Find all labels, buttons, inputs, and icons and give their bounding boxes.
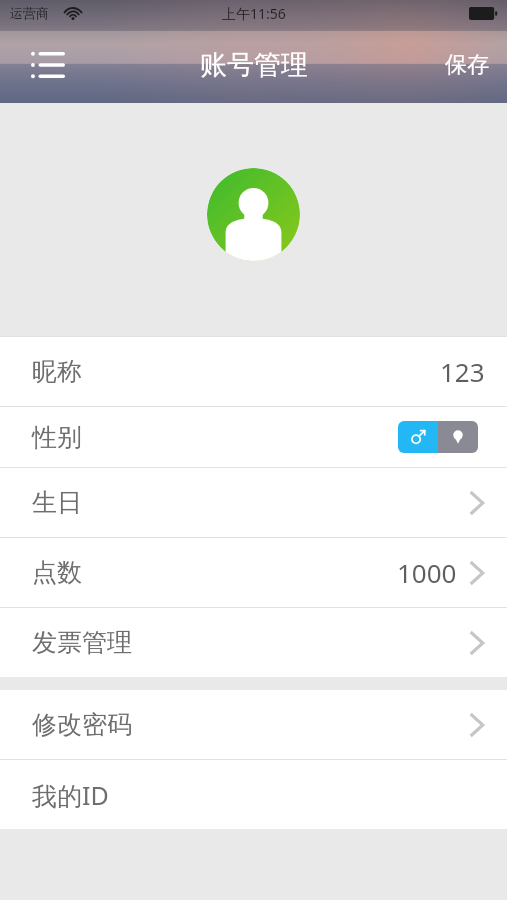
staticText: 上午11:56 [222,4,286,23]
button[interactable]: 性别 [0,407,507,467]
staticText: 我的ID [32,778,109,812]
staticText: 发票管理 [32,627,132,658]
button[interactable]: 保存 [427,41,507,89]
staticText: 性别 [32,422,82,453]
button[interactable]: Male [398,421,438,453]
button[interactable]: 昵称 [0,337,507,406]
staticText: 点数 [32,557,82,588]
button[interactable]: 我的ID [0,760,507,829]
button[interactable]: 发票管理 [0,608,507,677]
button[interactable]: Female [438,421,478,453]
button[interactable]: 点数 [0,538,507,607]
staticText: 运营商 [10,5,49,21]
button[interactable]: Menu [26,43,70,87]
staticText: 1000 [397,555,457,590]
staticText: 昵称 [32,356,82,387]
button[interactable]: 生日 [0,468,507,537]
staticText: 账号管理 [200,48,308,82]
staticText: 保存 [445,51,489,79]
button[interactable]: 修改密码 [0,690,507,759]
staticText: 生日 [32,487,82,518]
staticText: 修改密码 [32,709,132,740]
button[interactable]: Avatar [207,168,300,261]
staticText: 123 [440,354,485,389]
